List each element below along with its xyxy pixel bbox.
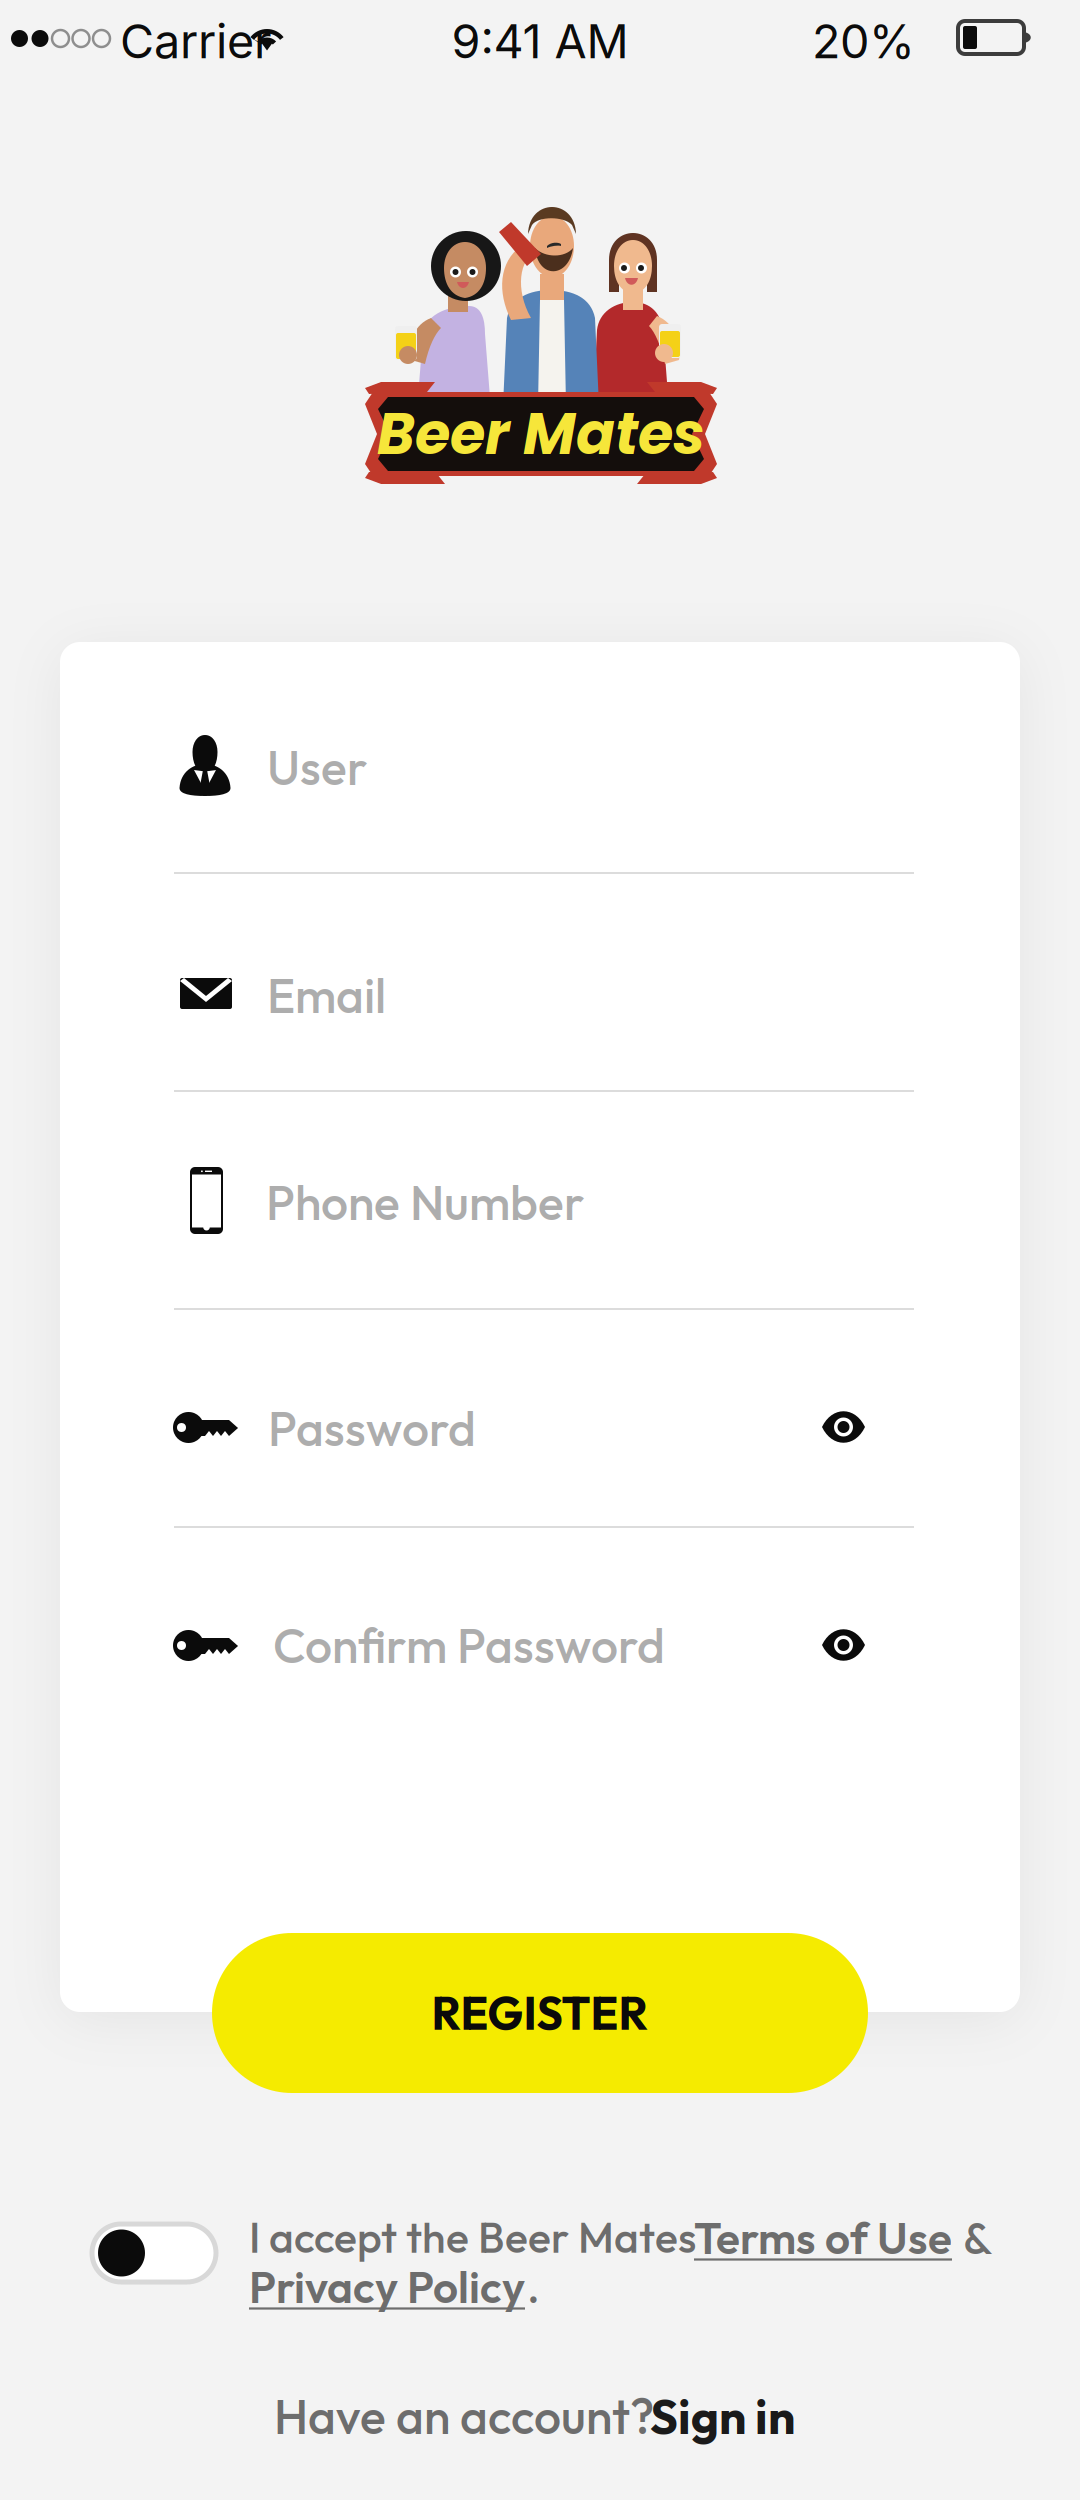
staticText: . — [527, 2259, 540, 2314]
button[interactable]: Show password — [822, 1412, 865, 1442]
staticText: Email — [267, 965, 386, 1025]
staticText: Have an account? — [274, 2386, 654, 2446]
staticText: I accept the Beer Mates — [249, 2210, 696, 2264]
staticText: & — [963, 2210, 992, 2265]
staticText: REGISTER — [431, 1984, 648, 2041]
staticText: 20% — [812, 13, 915, 69]
staticText: Phone Number — [266, 1172, 584, 1232]
staticText: Carrier — [120, 13, 272, 69]
button[interactable]: Privacy Policy — [249, 2259, 525, 2314]
button[interactable]: Terms of Use — [694, 2210, 952, 2265]
button[interactable]: Show confirm password — [822, 1630, 865, 1660]
staticText: Sign in — [650, 2386, 795, 2446]
button[interactable]: REGISTER — [212, 1933, 868, 2093]
button[interactable]: Accept terms — [92, 2224, 216, 2282]
button[interactable]: Sign in — [650, 2386, 795, 2446]
staticText: Privacy Policy — [249, 2259, 525, 2314]
staticText: 9:41 AM — [451, 13, 628, 69]
staticText: Terms of Use — [694, 2210, 952, 2265]
staticText: Confirm Password — [273, 1615, 665, 1675]
staticText: Password — [268, 1398, 476, 1458]
staticText: User — [267, 737, 367, 797]
staticText: Beer Mates — [377, 394, 705, 474]
